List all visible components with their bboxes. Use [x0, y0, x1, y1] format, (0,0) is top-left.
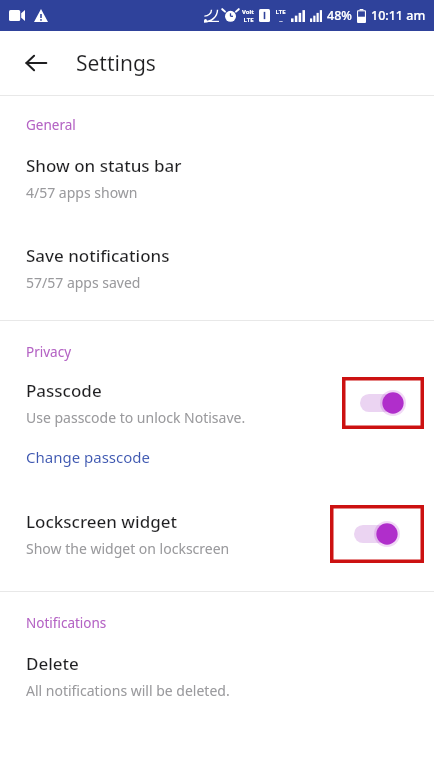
staticText: All notifications will be deleted.	[26, 681, 230, 700]
button[interactable]: Lockscreen widget toggle	[330, 505, 424, 563]
button[interactable]: Passcode toggle	[342, 377, 424, 429]
staticText: 10:11 am	[371, 7, 426, 24]
staticText: ..	[279, 16, 283, 24]
button[interactable]: Lockscreen widget	[0, 505, 434, 563]
staticText: General	[26, 116, 76, 134]
staticText: Use passcode to unlock Notisave.	[26, 408, 246, 427]
button[interactable]: Delete	[0, 650, 434, 702]
button[interactable]: Back	[14, 41, 58, 85]
staticText: Show the widget on lockscreen	[26, 539, 230, 558]
staticText: Save notifications	[26, 244, 170, 267]
button[interactable]: Change passcode	[0, 443, 434, 471]
staticText: Volt	[242, 8, 254, 16]
staticText: Delete	[26, 652, 79, 675]
staticText: Settings	[76, 49, 156, 78]
staticText: Lockscreen widget	[26, 510, 178, 533]
button[interactable]: Passcode	[0, 377, 434, 429]
staticText: 57/57 apps saved	[26, 273, 141, 292]
staticText: Show on status bar	[26, 154, 182, 177]
staticText: Privacy	[26, 343, 72, 361]
staticText: 4/57 apps shown	[26, 183, 138, 202]
staticText: Change passcode	[26, 447, 150, 467]
button[interactable]: Save notifications	[0, 242, 434, 294]
staticText: LTE	[275, 8, 286, 16]
button[interactable]: Show on status bar	[0, 152, 434, 204]
staticText: Passcode	[26, 379, 102, 402]
staticText: Notifications	[26, 614, 107, 632]
staticText: LTE	[243, 16, 254, 24]
staticText: 48%	[327, 7, 352, 24]
